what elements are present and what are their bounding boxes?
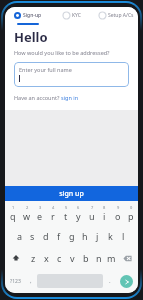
button[interactable]: g [65,225,78,247]
button[interactable]: k [104,225,117,247]
button[interactable]: ?123 [6,269,25,293]
button[interactable]: j [91,225,104,247]
staticText: Enter your full name [19,66,72,73]
staticText: c [57,252,62,264]
staticText: i [103,210,106,222]
button[interactable]: sign up [5,186,138,201]
staticText: q [10,210,16,222]
staticText: 5 [65,205,68,210]
staticText: sign up [59,189,84,199]
staticText: b [83,252,89,264]
button[interactable]: 3 [33,201,46,225]
button[interactable]: 4 [46,201,59,225]
staticText: d [43,230,49,242]
staticText: j [96,230,99,242]
staticText: Hello [14,28,48,46]
button[interactable]: Enter [120,275,133,288]
button[interactable]: KYC [50,7,94,23]
button[interactable]: 6 [72,201,85,225]
staticText: h [82,230,88,242]
button[interactable]: Sign-up [5,7,50,25]
staticText: v [70,252,75,264]
staticText: KYC [72,12,81,19]
button[interactable]: Enter your full name [14,62,129,87]
button[interactable]: Shift [6,247,26,269]
button[interactable]: s [26,225,39,247]
button[interactable]: Setup A/Cs [94,7,138,23]
staticText: t [64,210,68,222]
button[interactable]: b [79,247,92,269]
button[interactable]: sign in [61,94,79,101]
staticText: u [89,210,95,222]
staticText: y [76,210,81,222]
staticText: sign in [61,94,79,101]
staticText: 9 [117,205,120,210]
button[interactable]: l [117,225,130,247]
button[interactable]: h [78,225,91,247]
button[interactable]: x [40,247,53,269]
button[interactable]: Backspace [118,247,137,269]
staticText: e [37,210,43,222]
staticText: x [44,252,49,264]
staticText: How would you like to be addressed? [14,49,110,56]
button[interactable]: f [52,225,65,247]
button[interactable]: m [105,247,118,269]
staticText: n [96,252,102,264]
staticText: z [31,252,36,264]
button[interactable]: 8 [98,201,111,225]
staticText: l [122,230,125,242]
button[interactable]: 1 [6,201,20,225]
staticText: Sign-up [23,12,42,19]
staticText: a [17,230,23,242]
staticText: ?123 [10,278,21,285]
staticText: 2 [26,205,29,210]
staticText: f [57,230,61,242]
button[interactable]: 0 [124,201,137,225]
button[interactable]: , [25,269,36,293]
button[interactable]: 9 [111,201,124,225]
staticText: k [108,230,113,242]
staticText: s [30,230,35,242]
staticText: 3 [39,205,42,210]
button[interactable]: a [13,225,26,247]
staticText: Setup A/Cs [108,12,134,19]
button[interactable]: d [39,225,52,247]
staticText: . [109,277,111,285]
button[interactable]: 7 [85,201,98,225]
staticText: g [69,230,75,242]
staticText: w [23,210,31,222]
button[interactable]: 2 [20,201,33,225]
staticText: 4 [52,205,55,210]
staticText: 7 [91,205,94,210]
button[interactable]: 5 [59,201,72,225]
staticText: 8 [103,205,106,210]
button[interactable]: v [66,247,79,269]
staticText: m [107,252,116,264]
staticText: r [51,210,55,222]
staticText: Have an account? [14,94,61,101]
staticText: 0 [130,205,133,210]
staticText: p [128,210,134,222]
staticText: , [30,277,32,285]
button[interactable]: c [53,247,66,269]
staticText: 1 [12,205,15,210]
button[interactable]: z [26,247,40,269]
staticText: o [115,210,121,222]
button[interactable]: n [92,247,105,269]
staticText: 6 [77,205,80,210]
